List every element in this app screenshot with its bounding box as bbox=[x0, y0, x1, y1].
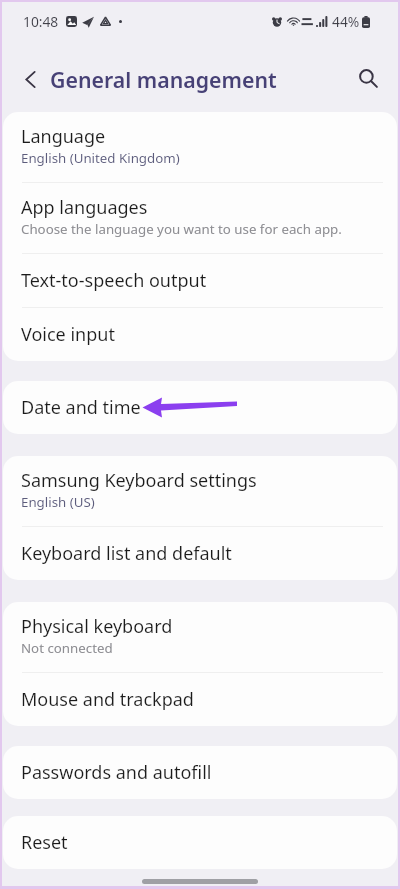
button[interactable]: Passwords and autofill bbox=[3, 746, 397, 799]
button[interactable]: Back bbox=[14, 61, 46, 93]
staticText: Date and time bbox=[21, 395, 141, 420]
button[interactable]: Physical keyboard bbox=[3, 602, 397, 672]
button[interactable]: Text-to-speech output bbox=[3, 254, 397, 307]
staticText: Text-to-speech output bbox=[21, 268, 207, 293]
staticText: Passwords and autofill bbox=[21, 760, 212, 785]
staticText: English (United Kingdom) bbox=[21, 149, 180, 167]
staticText: Mouse and trackpad bbox=[21, 687, 194, 712]
button[interactable]: Voice input bbox=[3, 308, 397, 361]
staticText: App languages bbox=[21, 195, 148, 220]
staticText: Keyboard list and default bbox=[21, 541, 232, 566]
staticText: English (US) bbox=[21, 493, 95, 511]
staticText: General management bbox=[50, 65, 277, 94]
staticText: Choose the language you want to use for … bbox=[21, 220, 342, 238]
button[interactable]: Keyboard list and default bbox=[3, 527, 397, 580]
staticText: 44% bbox=[332, 12, 360, 31]
staticText: Voice input bbox=[21, 322, 115, 347]
button[interactable]: Samsung Keyboard settings bbox=[3, 456, 397, 526]
staticText: Reset bbox=[21, 830, 68, 855]
button[interactable]: Search bbox=[352, 61, 384, 93]
staticText: Physical keyboard bbox=[21, 614, 173, 639]
staticText: 10:48 bbox=[23, 12, 59, 31]
staticText: Samsung Keyboard settings bbox=[21, 468, 257, 493]
staticText: Not connected bbox=[21, 639, 113, 657]
button[interactable]: Reset bbox=[3, 816, 397, 869]
button[interactable]: App languages bbox=[3, 183, 397, 253]
button[interactable]: Language bbox=[3, 112, 397, 182]
staticText: Language bbox=[21, 124, 106, 149]
button[interactable]: Mouse and trackpad bbox=[3, 673, 397, 726]
button[interactable]: Date and time bbox=[3, 381, 397, 434]
